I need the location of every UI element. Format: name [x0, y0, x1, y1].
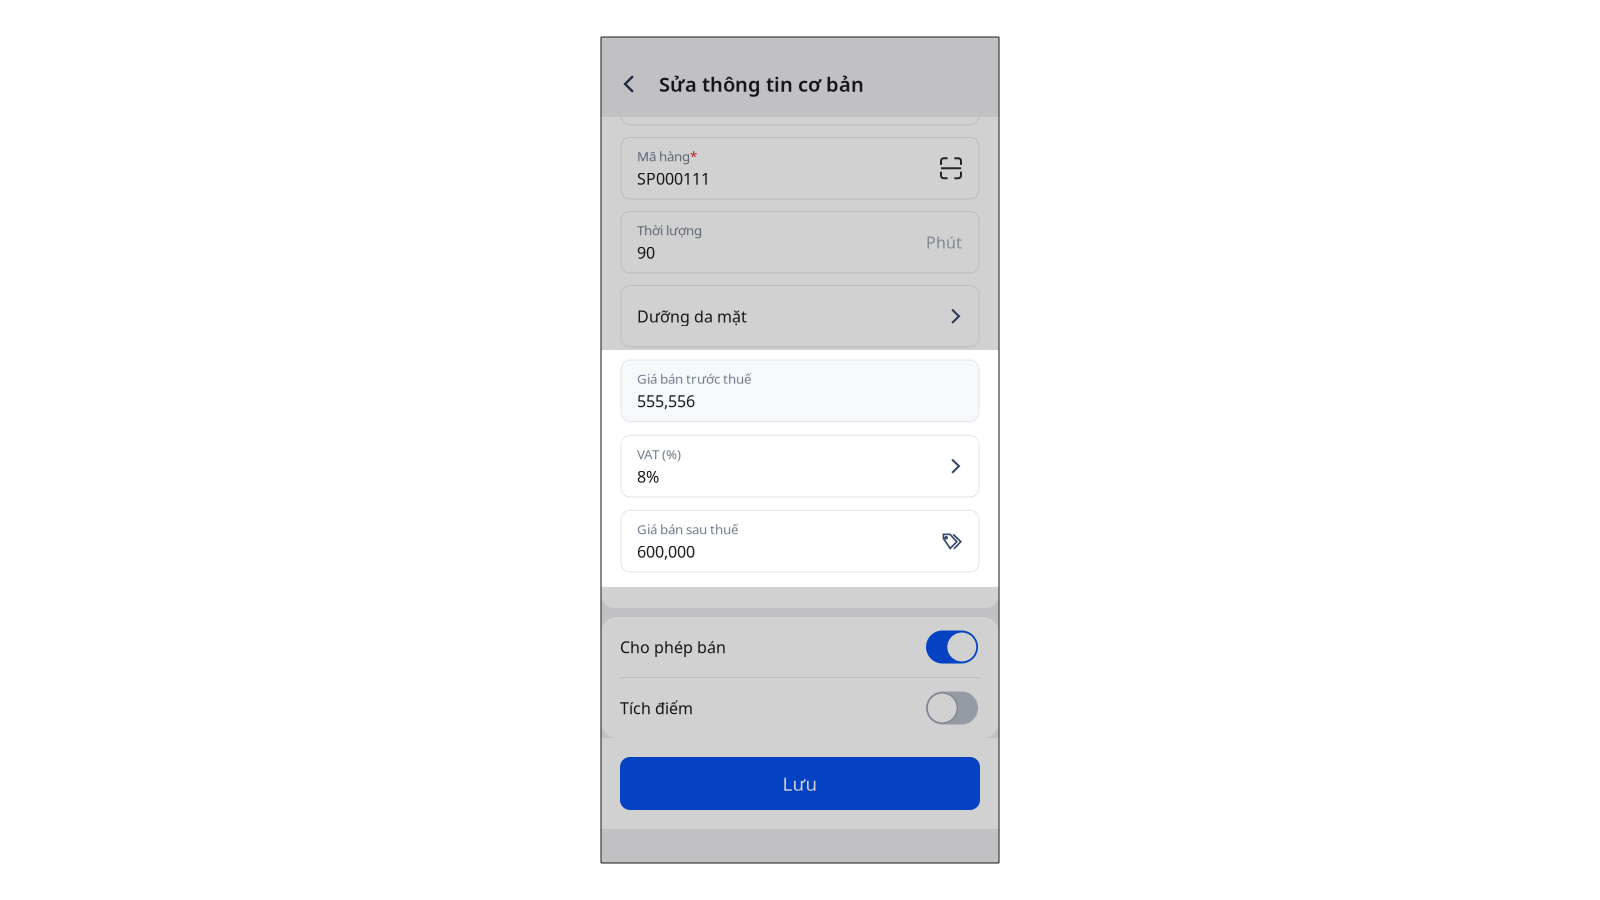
button[interactable]: Price list: [942, 533, 962, 550]
staticText: 555,556: [637, 390, 695, 412]
staticText: Giá bán trước thuế: [637, 370, 752, 387]
staticText: *: [690, 147, 697, 165]
button[interactable]: Scan barcode: [940, 157, 962, 179]
staticText: VAT (%): [637, 445, 681, 463]
button[interactable]: Back: [613, 66, 645, 102]
staticText: SP000111: [637, 168, 710, 189]
staticText: 8%: [637, 466, 659, 487]
staticText: Cho phép bán: [620, 636, 726, 658]
staticText: Giá bán sau thuế: [637, 520, 739, 538]
staticText: Lưu: [782, 771, 817, 796]
button[interactable]: Cho phép bán: [601, 617, 999, 677]
staticText: Mã hàng: [637, 147, 690, 165]
button[interactable]: Lưu: [620, 757, 980, 810]
button[interactable]: VAT (%): [601, 37, 999, 608]
button[interactable]: Dưỡng da mặt: [601, 37, 999, 608]
staticText: Tích điểm: [620, 697, 693, 719]
staticText: Phút: [926, 232, 962, 253]
staticText: Thời lượng: [637, 221, 702, 239]
staticText: Dưỡng da mặt: [637, 306, 747, 327]
staticText: Sửa thông tin cơ bản: [659, 71, 864, 97]
staticText: 90: [637, 242, 655, 263]
staticText: 600,000: [637, 541, 695, 562]
button[interactable]: Tích điểm: [601, 678, 999, 738]
